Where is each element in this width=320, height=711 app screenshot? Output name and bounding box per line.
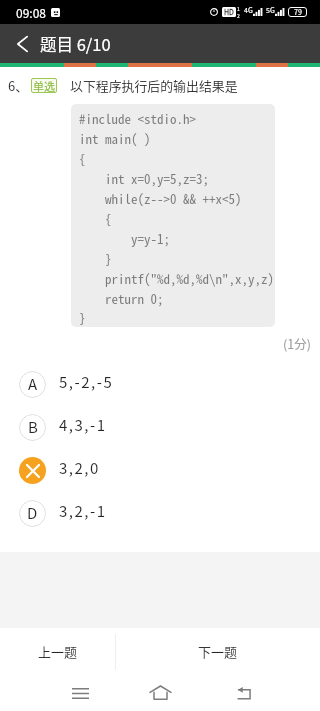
staticText: (1分) <box>283 334 311 352</box>
staticText: printf("%d,%d,%d\n",x,y,z); <box>79 269 275 288</box>
button[interactable]: Recent apps <box>64 677 96 709</box>
button[interactable]: 下一题 <box>115 628 320 675</box>
staticText: 4G <box>244 5 253 15</box>
staticText: 以下程序执行后的输出结果是 <box>70 76 238 95</box>
button[interactable]: Home <box>144 677 176 709</box>
staticText: HD <box>224 7 234 17</box>
button[interactable]: A <box>0 363 320 406</box>
staticText: 5,-2,-5 <box>59 371 114 393</box>
staticText: 3,2,0 <box>59 457 100 479</box>
staticText: D <box>27 502 38 524</box>
staticText: 6、 <box>8 76 29 95</box>
button[interactable]: B <box>0 406 320 449</box>
button[interactable]: Back <box>228 677 260 709</box>
staticText: while(z-->0 && ++x<5) <box>79 189 242 208</box>
staticText: 09:08 <box>16 4 46 21</box>
staticText: 79 <box>294 7 302 17</box>
staticText: int main( ) <box>79 129 151 148</box>
staticText: A <box>28 373 38 395</box>
button[interactable]: 3,2,0 <box>0 449 320 492</box>
staticText: { <box>79 149 86 168</box>
staticText: 上一题 <box>38 642 78 661</box>
staticText: } <box>79 249 112 268</box>
staticText: 2 <box>237 12 240 19</box>
button[interactable]: D <box>0 492 320 535</box>
staticText: #include <stdio.h> <box>79 109 196 128</box>
staticText: 3,2,-1 <box>59 500 107 522</box>
staticText: B <box>28 416 38 438</box>
staticText: 单选 <box>33 78 55 93</box>
staticText: 5G <box>266 5 275 15</box>
staticText: y=y-1; <box>79 229 170 248</box>
staticText: return 0; <box>79 289 164 308</box>
staticText: { <box>79 209 112 228</box>
staticText: int x=0,y=5,z=3; <box>79 169 209 188</box>
button[interactable]: Back <box>6 28 38 60</box>
staticText: 题目 6/10 <box>40 32 111 56</box>
button[interactable]: 上一题 <box>0 628 115 675</box>
staticText: 1 <box>237 5 240 12</box>
staticText: 4,3,-1 <box>59 414 107 436</box>
staticText: 下一题 <box>198 642 238 661</box>
staticText: } <box>79 308 86 327</box>
